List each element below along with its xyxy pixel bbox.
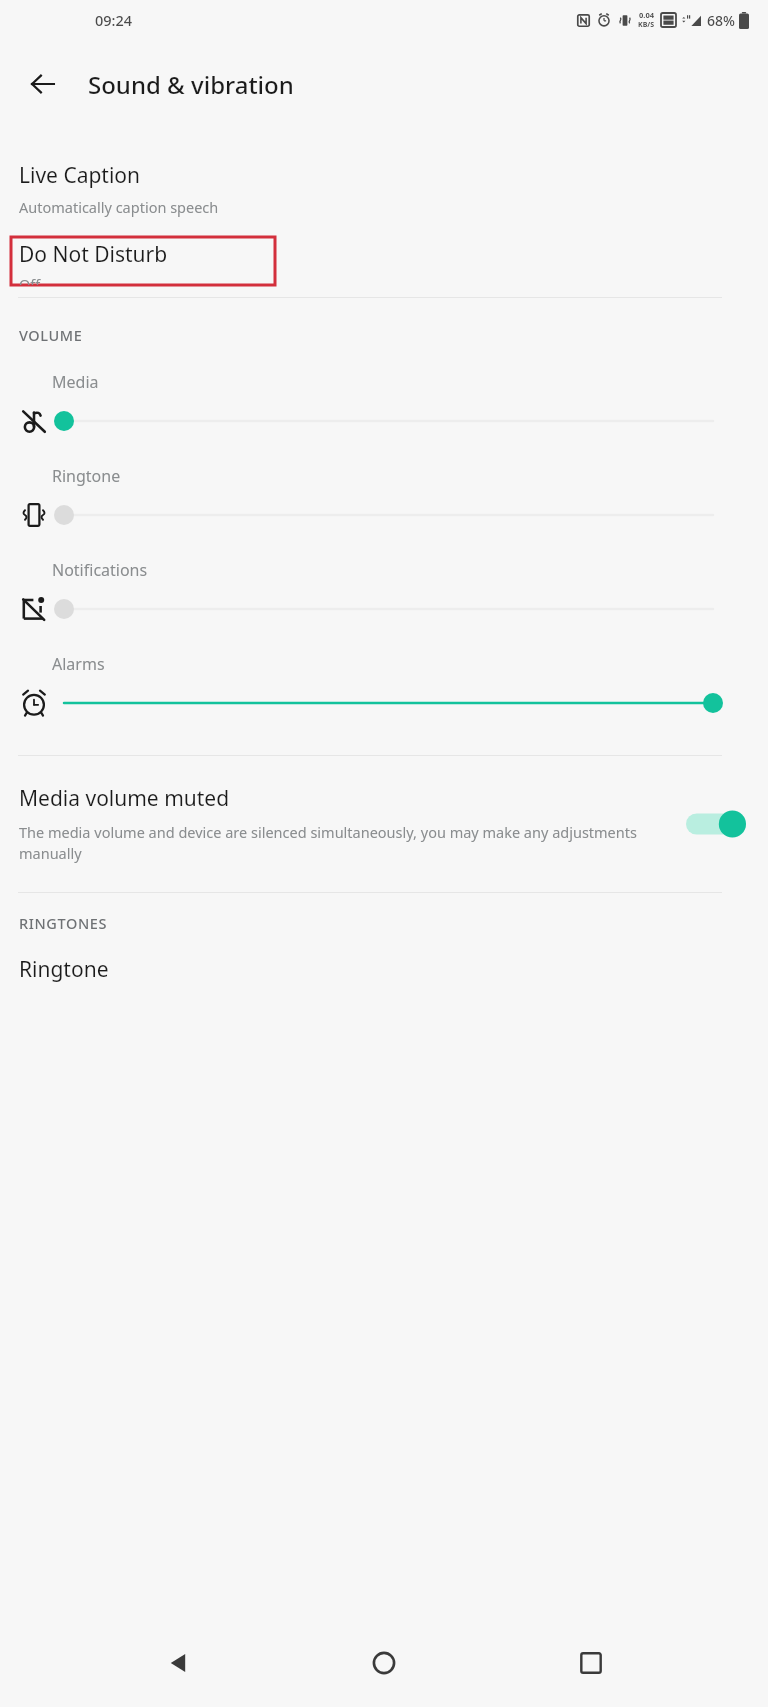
button[interactable]: Media volume muted xyxy=(0,766,768,882)
staticText: Do Not Disturb xyxy=(19,240,168,269)
staticText: Automatically caption speech xyxy=(19,197,219,217)
staticText: Notifications xyxy=(52,559,148,581)
staticText: Media volume muted xyxy=(19,784,230,813)
staticText: Alarms xyxy=(52,653,105,675)
button[interactable]: Alarms xyxy=(0,653,768,723)
staticText: Off xyxy=(19,274,41,285)
staticText: Sound & vibration xyxy=(88,68,294,101)
button[interactable]: Media xyxy=(0,371,768,441)
staticText: RINGTONES xyxy=(19,913,108,933)
button[interactable]: Back xyxy=(149,1634,207,1692)
button[interactable]: Recent apps xyxy=(562,1634,620,1692)
staticText: KB/S xyxy=(638,20,655,30)
button[interactable]: Live Caption xyxy=(0,161,768,217)
button[interactable]: Do Not Disturb xyxy=(11,237,275,285)
button[interactable]: Back xyxy=(20,61,66,107)
staticText: Media xyxy=(52,371,99,393)
staticText: Live Caption xyxy=(19,161,141,190)
staticText: 0.04 xyxy=(639,10,654,20)
staticText: VOLUME xyxy=(19,325,83,345)
button[interactable]: Notifications xyxy=(0,559,768,629)
staticText: 68% xyxy=(707,11,735,30)
staticText: Ringtone xyxy=(19,955,109,984)
button[interactable]: Home xyxy=(355,1634,413,1692)
button[interactable]: Media volume muted toggle xyxy=(686,807,746,841)
staticText: 09:24 xyxy=(95,10,133,30)
staticText: The media volume and device are silenced… xyxy=(19,822,670,864)
button[interactable]: Ringtone xyxy=(0,465,768,535)
staticText: Ringtone xyxy=(52,465,121,487)
